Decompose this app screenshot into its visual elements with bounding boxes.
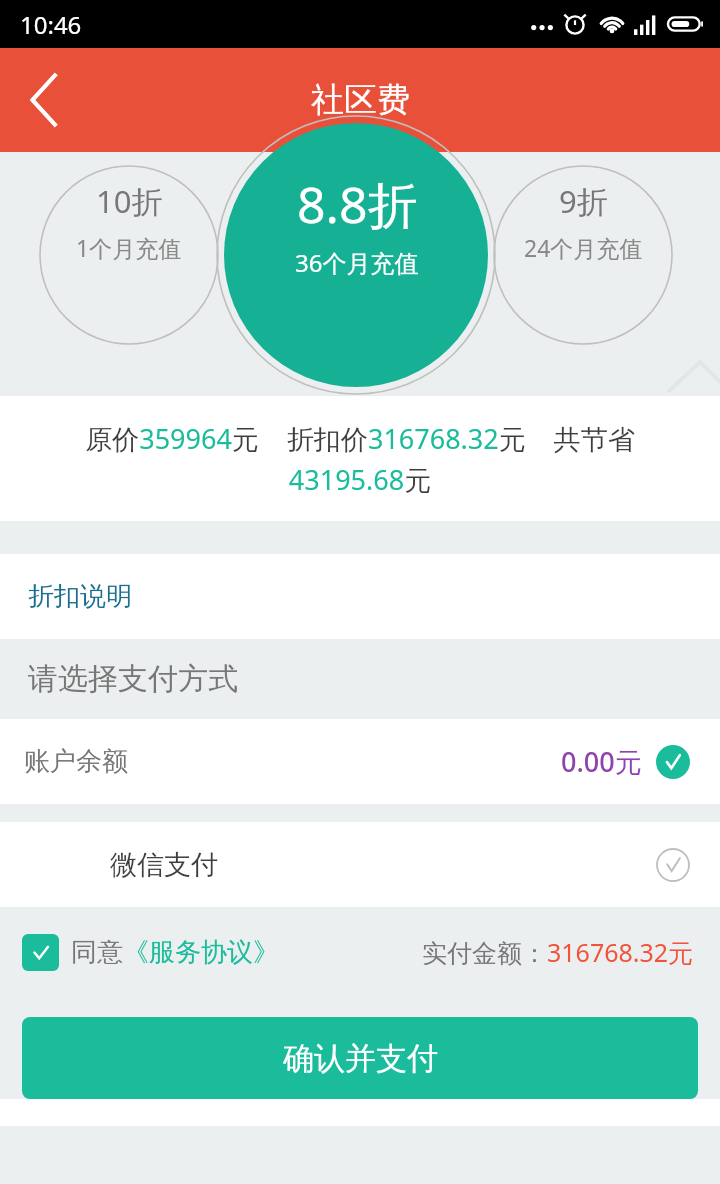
staticText: 9折: [559, 180, 608, 222]
staticText: 10折: [96, 180, 163, 222]
staticText: 账户余额: [24, 745, 128, 778]
staticText: 0.00元: [561, 743, 642, 780]
staticText: 原价359964元 折扣价316768.32元 共节省43195.68元: [28, 420, 692, 498]
staticText: 同意《服务协议》: [71, 936, 279, 969]
staticText: 微信支付: [110, 848, 218, 882]
staticText: 实付金额：316768.32元: [422, 935, 694, 969]
staticText: 8.8折: [297, 170, 418, 238]
staticText: 36个月充值: [295, 246, 419, 279]
staticText: 1个月充值: [76, 232, 182, 263]
button[interactable]: 8.8折: [226, 170, 488, 320]
staticText: 10:46: [20, 8, 82, 41]
button[interactable]: Back: [0, 48, 88, 152]
button[interactable]: 9折: [493, 180, 673, 310]
staticText: 确认并支付: [283, 1039, 438, 1078]
button[interactable]: 10折: [39, 180, 219, 310]
staticText: 请选择支付方式: [28, 660, 238, 698]
button[interactable]: 折扣说明: [0, 554, 720, 639]
staticText: 折扣说明: [28, 580, 132, 613]
button[interactable]: 确认并支付: [22, 1017, 698, 1099]
button[interactable]: 账户余额: [0, 719, 720, 804]
button[interactable]: 同意《服务协议》: [22, 934, 279, 971]
staticText: 24个月充值: [524, 232, 643, 263]
staticText: 社区费: [311, 79, 410, 121]
button[interactable]: 微信支付: [0, 822, 720, 907]
